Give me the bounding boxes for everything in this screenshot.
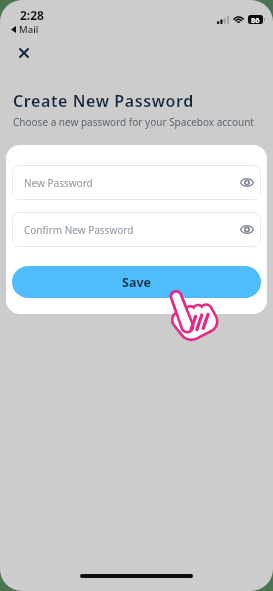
staticText: Create New Password <box>13 90 194 112</box>
staticText: 86 <box>251 15 260 24</box>
button[interactable]: Save <box>12 266 261 298</box>
staticText: Mail <box>19 23 39 36</box>
staticText: Confirm New Password <box>24 223 134 237</box>
staticText: New Password <box>24 176 93 190</box>
staticText: Choose a new password for your Spacebox … <box>13 115 254 129</box>
button[interactable]: Confirm New Password <box>12 212 261 247</box>
staticText: Save <box>122 274 151 291</box>
button[interactable]: Show password <box>240 177 254 188</box>
button[interactable]: Show password <box>240 224 254 235</box>
button[interactable]: Close <box>11 40 36 65</box>
button[interactable]: New Password <box>12 165 261 200</box>
staticText: 2:28 <box>20 7 44 23</box>
